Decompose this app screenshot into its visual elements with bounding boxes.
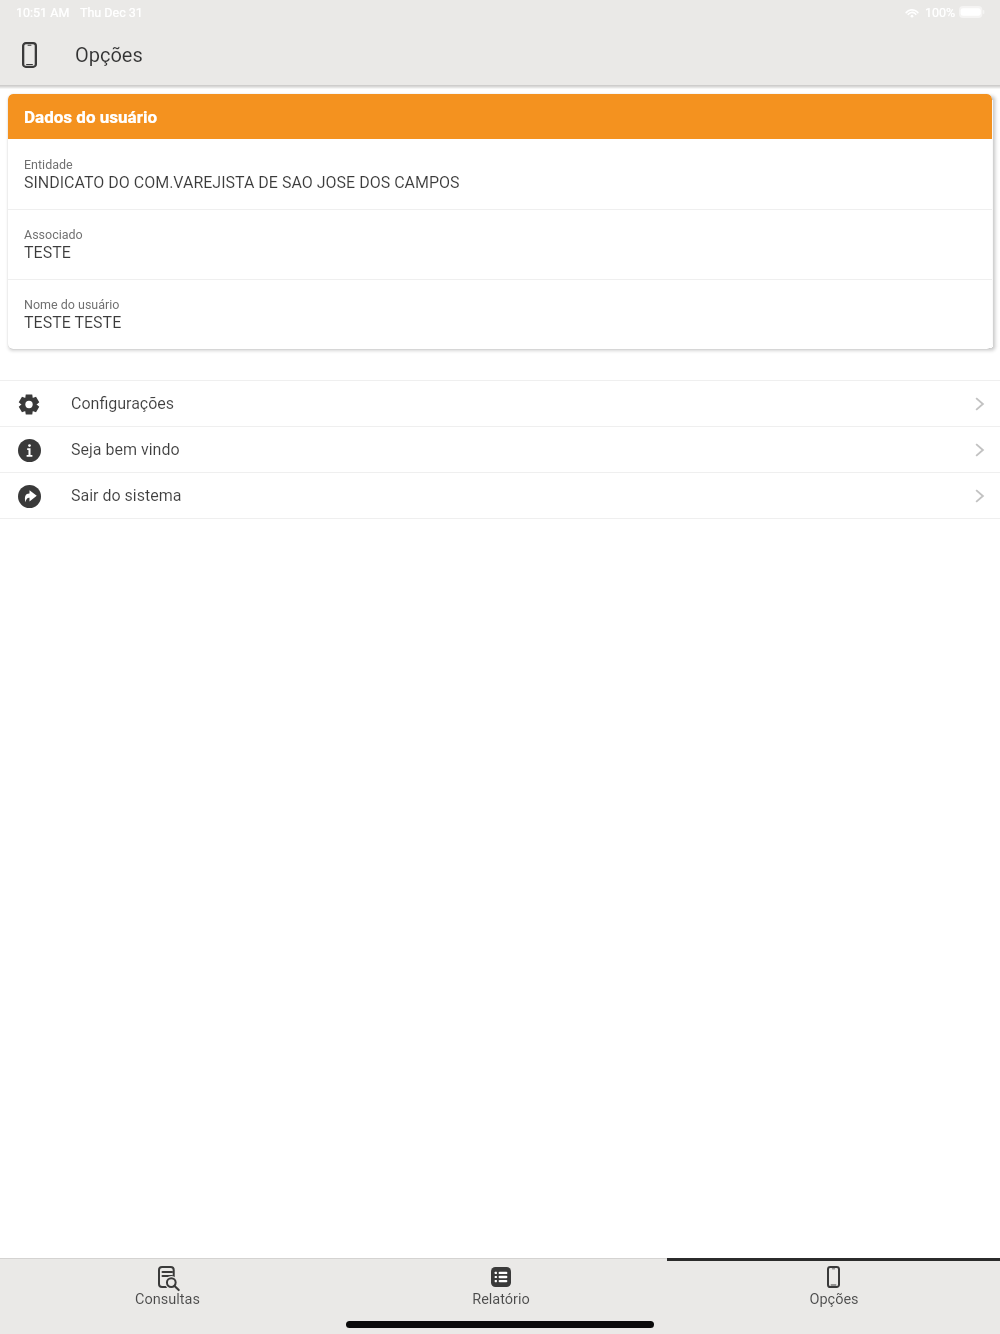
button[interactable]: Dispositivo xyxy=(7,32,52,77)
staticText: Thu Dec 31 xyxy=(80,5,143,20)
staticText: 100% xyxy=(925,5,956,20)
staticText: Consultas xyxy=(135,1291,200,1308)
staticText: SINDICATO DO COM.VAREJISTA DE SAO JOSE D… xyxy=(24,173,460,192)
staticText: 10:51 AM xyxy=(16,5,70,20)
button[interactable]: Sair do sistema xyxy=(0,473,1000,518)
button[interactable]: Relatório xyxy=(334,1258,667,1334)
staticText: Relatório xyxy=(472,1291,530,1308)
button[interactable]: Seja bem vindo xyxy=(0,427,1000,472)
staticText: TESTE TESTE xyxy=(24,313,122,332)
staticText: Opções xyxy=(75,43,143,66)
staticText: TESTE xyxy=(24,243,71,262)
staticText: Associado xyxy=(24,227,83,242)
staticText: Entidade xyxy=(24,157,73,172)
button[interactable]: Configurações xyxy=(0,381,1000,426)
staticText: Sair do sistema xyxy=(71,486,182,505)
staticText: Dados do usuário xyxy=(24,107,158,127)
staticText: Opções xyxy=(809,1291,859,1308)
staticText: Configurações xyxy=(71,394,175,413)
button[interactable]: Consultas xyxy=(0,1258,334,1334)
staticText: Seja bem vindo xyxy=(71,440,180,459)
button[interactable]: Opções xyxy=(667,1258,1000,1334)
staticText: Nome do usuário xyxy=(24,297,120,312)
